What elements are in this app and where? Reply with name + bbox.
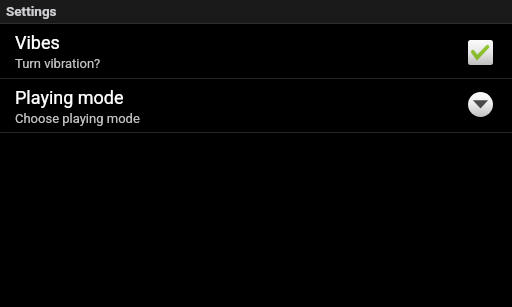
staticText: Playing mode	[15, 87, 124, 108]
staticText: Vibes	[15, 32, 60, 53]
staticText: Choose playing mode	[15, 111, 140, 126]
button[interactable]: Vibes checkbox	[468, 40, 493, 65]
button[interactable]: Choose playing mode	[468, 92, 493, 117]
staticText: Settings	[6, 3, 57, 19]
button[interactable]: Vibes	[0, 24, 512, 78]
button[interactable]: Playing mode	[0, 79, 512, 132]
staticText: Turn vibration?	[15, 56, 101, 71]
